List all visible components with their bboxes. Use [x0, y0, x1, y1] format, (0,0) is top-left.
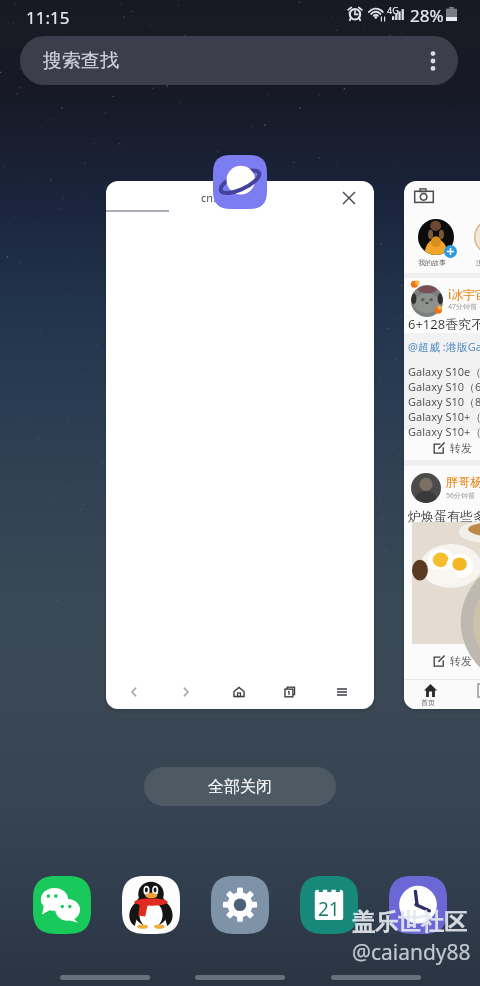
button[interactable]: Back	[118, 676, 150, 707]
staticText: @caiandy88	[352, 938, 471, 967]
button[interactable]: Home	[223, 676, 255, 707]
staticText: 21	[318, 896, 340, 922]
staticText: 4G	[387, 4, 399, 16]
button[interactable]: 搜索查找	[20, 36, 458, 85]
staticText: 盖乐世社区	[352, 908, 467, 937]
button[interactable]: WeChat	[32, 875, 92, 935]
staticText: 炉焕蛋有些多哈	[408, 508, 480, 524]
button[interactable]: Forward	[170, 676, 202, 707]
button[interactable]: Recents	[60, 969, 150, 985]
button[interactable]: cn.b	[106, 181, 374, 709]
button[interactable]: Back	[331, 969, 421, 985]
staticText: Galaxy S10+（8+	[408, 424, 480, 439]
staticText: 我的故事	[418, 258, 446, 267]
button[interactable]: More options	[417, 45, 449, 77]
button[interactable]: 我的故事	[404, 181, 480, 709]
button[interactable]: Settings	[210, 875, 270, 935]
staticText: 56分钟前	[446, 491, 476, 501]
button[interactable]: Close	[335, 184, 363, 212]
staticText: 没有公	[476, 258, 480, 267]
staticText: 首页	[421, 698, 435, 707]
staticText: @超威 :港版Galax	[408, 339, 480, 354]
button[interactable]: Home	[195, 969, 285, 985]
button[interactable]	[213, 155, 267, 209]
staticText: Galaxy S10（6+1	[408, 379, 480, 394]
staticText: Galaxy S10（8+5	[408, 394, 480, 409]
staticText: 6+128香究不行吗	[408, 315, 480, 333]
staticText: 搜索查找	[43, 49, 119, 73]
staticText: i冰宇宙	[448, 286, 480, 302]
staticText: 11:15	[26, 6, 70, 29]
staticText: Galaxy S10+（6+	[408, 409, 480, 424]
button[interactable]: 全部关闭	[144, 767, 336, 806]
button[interactable]: QQ	[121, 875, 181, 935]
button[interactable]: Tabs	[274, 676, 306, 707]
staticText: 47分钟前	[448, 302, 478, 312]
button[interactable]: Menu	[326, 676, 358, 707]
staticText: 转发	[450, 654, 472, 668]
staticText: 转发	[450, 441, 472, 455]
staticText: cn.b	[201, 190, 223, 205]
staticText: 28%	[410, 4, 444, 27]
staticText: 胖哥杨人	[446, 474, 480, 489]
staticText: 全部关闭	[208, 777, 272, 797]
button[interactable]: Clock	[388, 875, 448, 935]
staticText: Galaxy S10e（6+	[408, 364, 480, 379]
button[interactable]: Calendar	[299, 875, 359, 935]
